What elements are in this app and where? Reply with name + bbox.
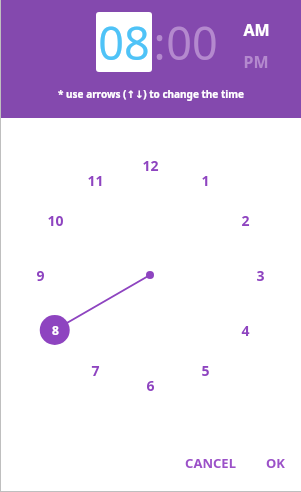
staticText: AM	[243, 19, 270, 41]
button[interactable]: PM	[241, 49, 271, 75]
staticText: :	[153, 12, 166, 72]
staticText: 5	[201, 361, 210, 380]
button[interactable]: 8	[40, 315, 70, 345]
button[interactable]: 4	[230, 315, 260, 345]
button[interactable]: 9	[25, 260, 55, 290]
button[interactable]: 3	[245, 260, 275, 290]
staticText: * use arrows (↑↓) to change the time	[58, 87, 244, 101]
staticText: 11	[87, 171, 104, 190]
button[interactable]: 5	[190, 355, 220, 385]
staticText: 3	[256, 266, 265, 285]
button[interactable]: 08	[96, 12, 152, 72]
button[interactable]: 11	[80, 165, 110, 195]
staticText: 1	[201, 171, 210, 190]
button[interactable]: CANCEL	[177, 446, 244, 480]
button[interactable]: 1	[190, 165, 220, 195]
staticText: 00	[166, 12, 218, 72]
staticText: 9	[36, 266, 45, 285]
staticText: 08	[98, 12, 150, 72]
staticText: CANCEL	[185, 454, 236, 472]
button[interactable]: 6	[135, 370, 165, 400]
staticText: 8	[52, 322, 59, 338]
button[interactable]: 7	[80, 355, 110, 385]
other: Clock face, hour selection	[0, 0, 301, 492]
staticText: 10	[47, 211, 64, 230]
staticText: 4	[241, 321, 250, 340]
staticText: 6	[146, 376, 155, 395]
button[interactable]: 00	[166, 12, 218, 72]
staticText: OK	[266, 454, 285, 472]
button[interactable]: 10	[40, 205, 70, 235]
staticText: 2	[241, 211, 250, 230]
staticText: 12	[142, 156, 159, 175]
staticText: 7	[91, 361, 100, 380]
button[interactable]: 12	[135, 150, 165, 180]
button[interactable]: 2	[230, 205, 260, 235]
button[interactable]: OK	[258, 446, 293, 480]
staticText: PM	[243, 51, 269, 73]
button[interactable]: AM	[241, 17, 272, 43]
